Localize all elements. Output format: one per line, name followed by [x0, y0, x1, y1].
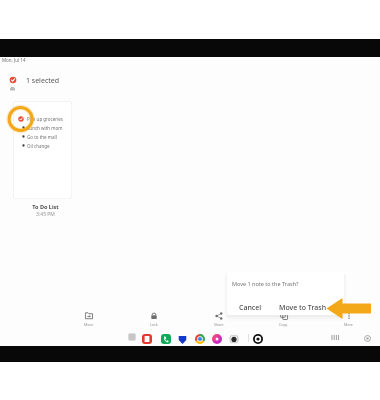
- staticText: Move: [84, 322, 94, 327]
- button[interactable]: Cancel: [235, 301, 266, 315]
- button[interactable]: Notes: [142, 334, 152, 344]
- button[interactable]: Lock: [138, 310, 170, 330]
- staticText: To Do List: [16, 203, 75, 210]
- staticText: Go to the mall: [27, 134, 57, 140]
- staticText: Cancel: [239, 303, 262, 313]
- staticText: More: [344, 322, 353, 327]
- staticText: Lunch with mom: [27, 125, 63, 131]
- button[interactable]: Camera: [229, 334, 239, 344]
- staticText: 3:45 PM: [16, 211, 75, 218]
- staticText: Share: [214, 322, 224, 327]
- button[interactable]: Photos: [212, 334, 222, 344]
- staticText: Mon, Jul 14: [2, 57, 26, 63]
- button[interactable]: Settings: [363, 334, 372, 343]
- staticText: 1 selected: [26, 76, 60, 86]
- button[interactable]: Share: [203, 310, 235, 330]
- button[interactable]: Messages: [178, 335, 187, 344]
- button[interactable]: Move: [73, 310, 105, 330]
- staticText: Lock: [150, 322, 158, 327]
- staticText: Oil change: [27, 143, 50, 149]
- button[interactable]: Camera 2: [253, 334, 263, 344]
- button[interactable]: Deselect all: [6, 73, 20, 87]
- button[interactable]: More: [332, 310, 364, 330]
- button[interactable]: Pick up groceries: [13, 101, 72, 199]
- button[interactable]: Move to Trash: [275, 301, 331, 315]
- staticText: Move to Trash: [279, 303, 327, 313]
- button[interactable]: All apps: [127, 332, 136, 341]
- button[interactable]: Phone: [161, 334, 171, 344]
- staticText: Pick up groceries: [27, 116, 64, 122]
- staticText: Move 1 note to the Trash?: [232, 280, 299, 287]
- button[interactable]: Chrome: [195, 334, 205, 344]
- button[interactable]: Copy: [267, 310, 299, 330]
- staticText: Copy: [279, 322, 288, 327]
